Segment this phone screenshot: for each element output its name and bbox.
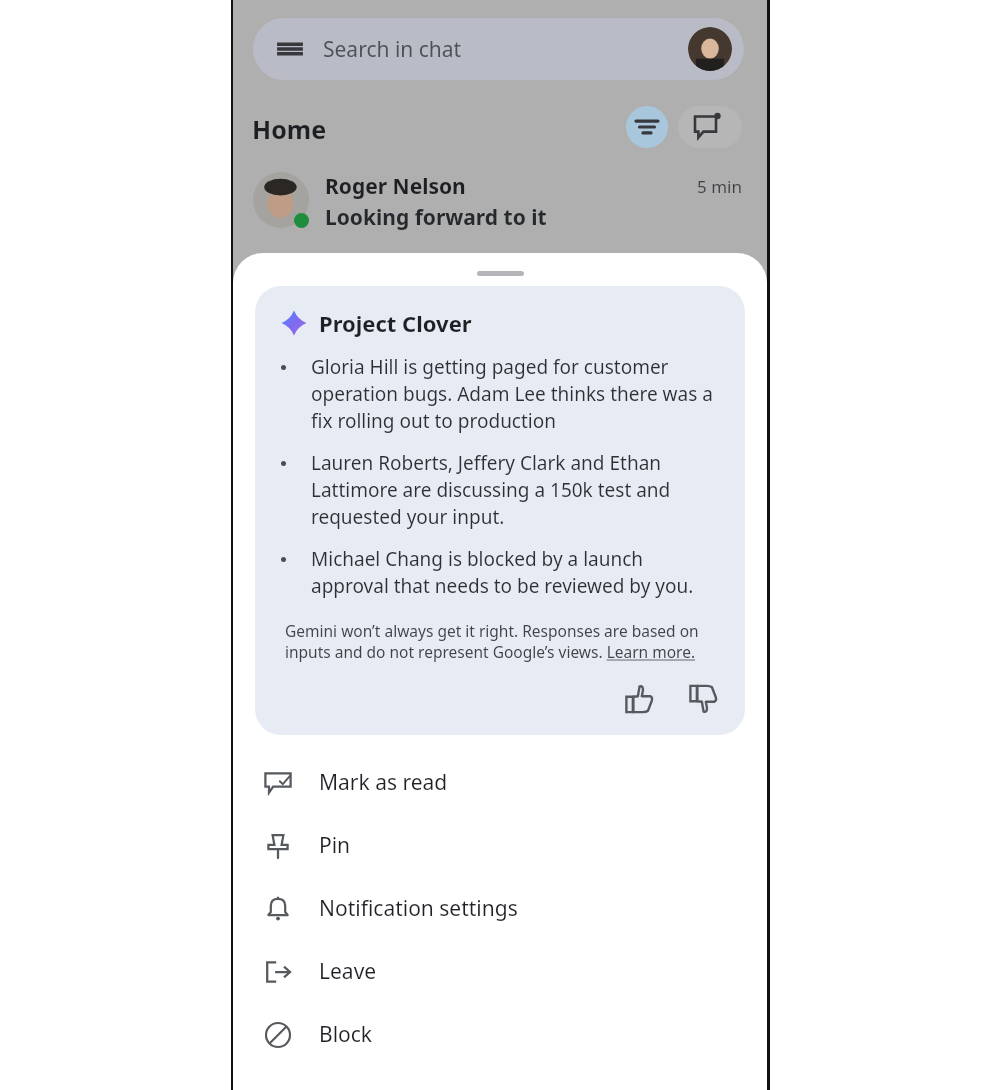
staticText: Michael Chang is blocked by a launch app… <box>311 546 725 598</box>
button[interactable]: Leave <box>233 940 767 1003</box>
button[interactable]: Open navigation menu <box>273 32 307 66</box>
staticText: Roger Nelson <box>325 172 466 201</box>
staticText: Pin <box>319 831 351 860</box>
staticText: Project Clover <box>319 308 472 338</box>
button[interactable]: Pin <box>233 814 767 877</box>
staticText: Block <box>319 1020 373 1049</box>
staticText: Mark as read <box>319 768 448 797</box>
staticText: Gemini won’t always get it right. Respon… <box>285 620 723 663</box>
button[interactable]: Notification settings <box>233 877 767 940</box>
button[interactable]: Account <box>688 27 732 71</box>
staticText: 5 min <box>697 175 742 198</box>
button[interactable]: Mark as read <box>233 751 767 814</box>
staticText: Gloria Hill is getting paged for custome… <box>311 354 725 433</box>
button[interactable]: Open navigation menu <box>253 18 744 80</box>
staticText: Lauren Roberts, Jeffery Clark and Ethan … <box>311 450 725 529</box>
staticText: Leave <box>319 957 377 986</box>
button[interactable]: Block <box>233 1003 767 1066</box>
staticText: Looking forward to it <box>325 203 547 232</box>
staticText: Home <box>252 112 327 146</box>
staticText: Search in chat <box>323 35 462 64</box>
button[interactable]: Filter <box>626 106 668 148</box>
staticText: Notification settings <box>319 894 518 923</box>
button[interactable]: Bad response <box>681 677 725 721</box>
button[interactable]: New chat <box>678 106 742 148</box>
button[interactable]: Good response <box>617 677 661 721</box>
